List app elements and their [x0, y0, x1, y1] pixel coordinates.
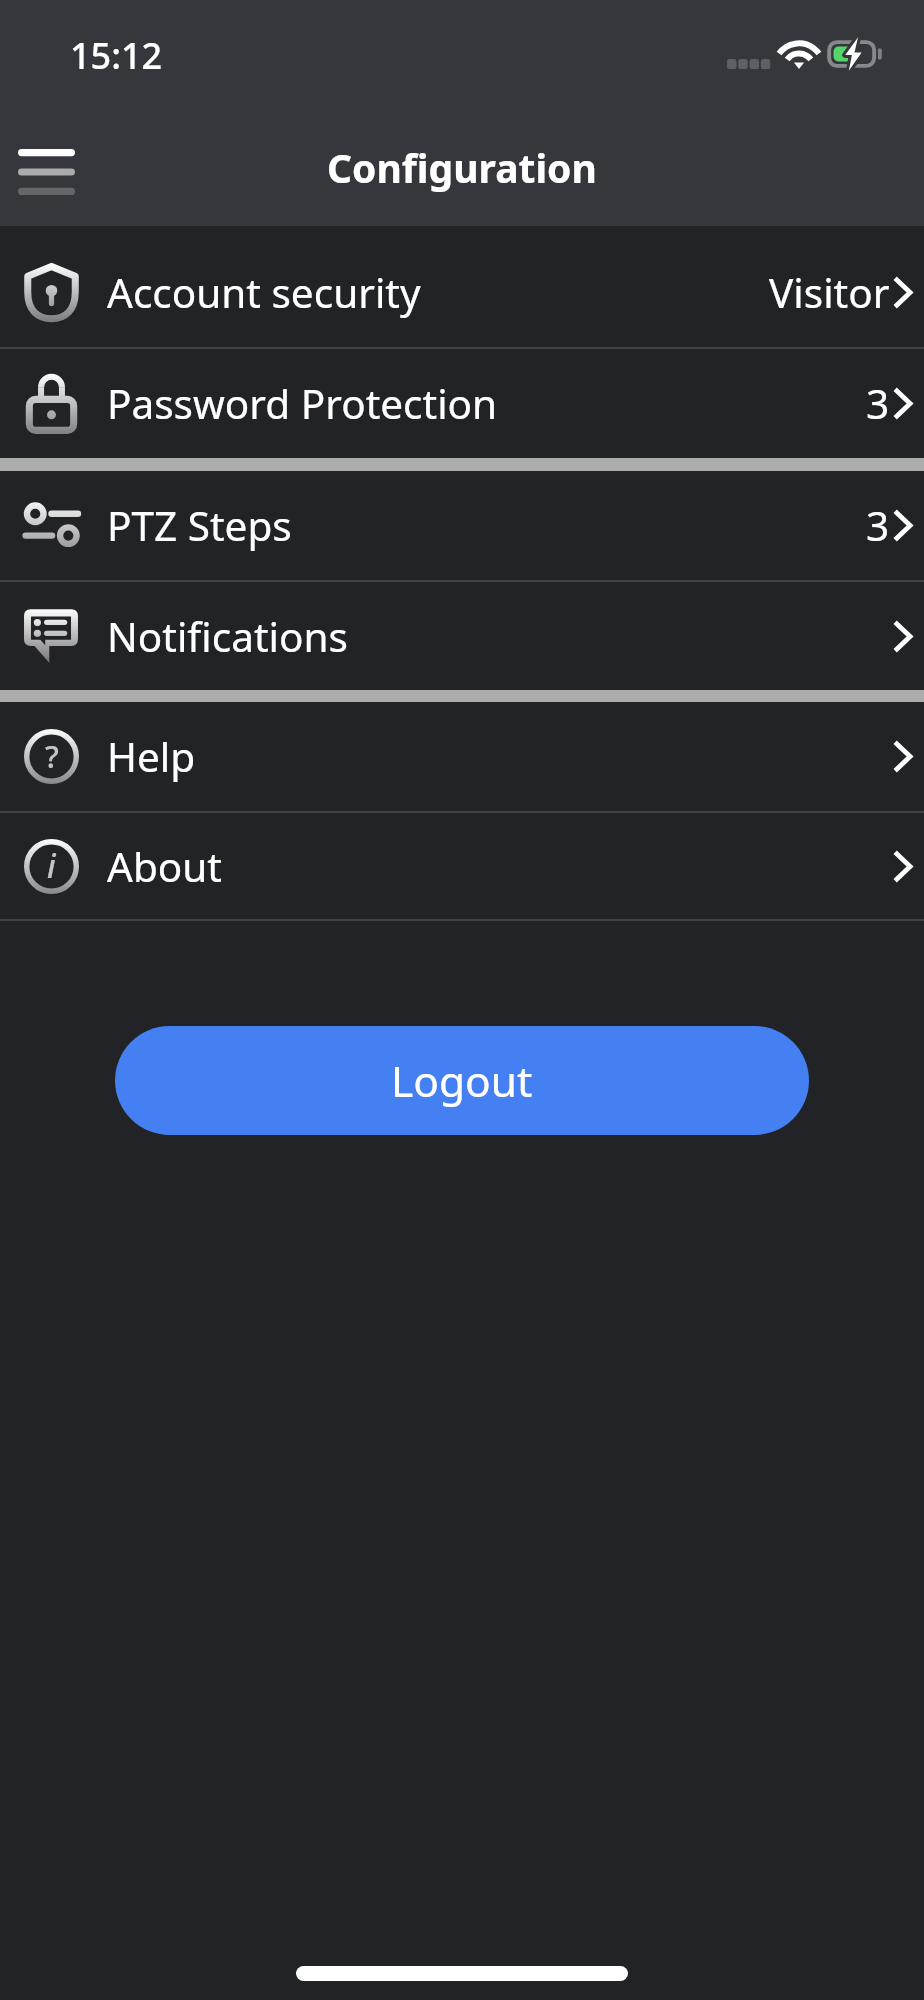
- button[interactable]: Notifications: [0, 582, 924, 690]
- button[interactable]: Menu: [4, 128, 88, 208]
- staticText: ?: [45, 735, 59, 777]
- button[interactable]: i: [0, 813, 924, 919]
- staticText: About: [107, 839, 222, 894]
- staticText: Configuration: [327, 141, 597, 194]
- staticText: 3: [866, 376, 890, 431]
- staticText: 15:12: [70, 31, 163, 80]
- staticText: Password Protection: [107, 376, 498, 431]
- button[interactable]: Account security: [0, 238, 924, 347]
- staticText: Logout: [391, 1052, 533, 1110]
- staticText: Account security: [107, 265, 421, 320]
- button[interactable]: Password Protection: [0, 349, 924, 458]
- staticText: i: [47, 844, 56, 888]
- staticText: Visitor: [769, 265, 890, 320]
- staticText: Notifications: [107, 609, 348, 664]
- staticText: PTZ Steps: [107, 498, 292, 553]
- staticText: Help: [107, 729, 196, 784]
- button[interactable]: ?: [0, 702, 924, 811]
- button[interactable]: Logout: [115, 1026, 809, 1135]
- staticText: 3: [866, 498, 890, 553]
- button[interactable]: PTZ Steps: [0, 471, 924, 580]
